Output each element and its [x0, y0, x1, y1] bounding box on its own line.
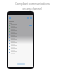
button[interactable]: [9, 48, 32, 51]
button[interactable]: Menu: [9, 17, 11, 19]
button[interactable]: [9, 30, 32, 33]
button[interactable]: [9, 33, 32, 36]
button[interactable]: [9, 27, 32, 30]
staticText: on any channel: [22, 7, 42, 11]
button[interactable]: [9, 45, 32, 48]
button[interactable]: [9, 42, 32, 45]
button[interactable]: Compose: [17, 63, 25, 65]
button[interactable]: [9, 36, 32, 39]
staticText: Compliant communications: [15, 2, 50, 6]
button[interactable]: [9, 39, 32, 42]
button[interactable]: [9, 24, 32, 27]
button[interactable]: [9, 51, 32, 54]
